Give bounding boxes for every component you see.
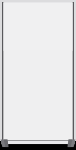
button[interactable]: Screen content — [0, 0, 76, 150]
